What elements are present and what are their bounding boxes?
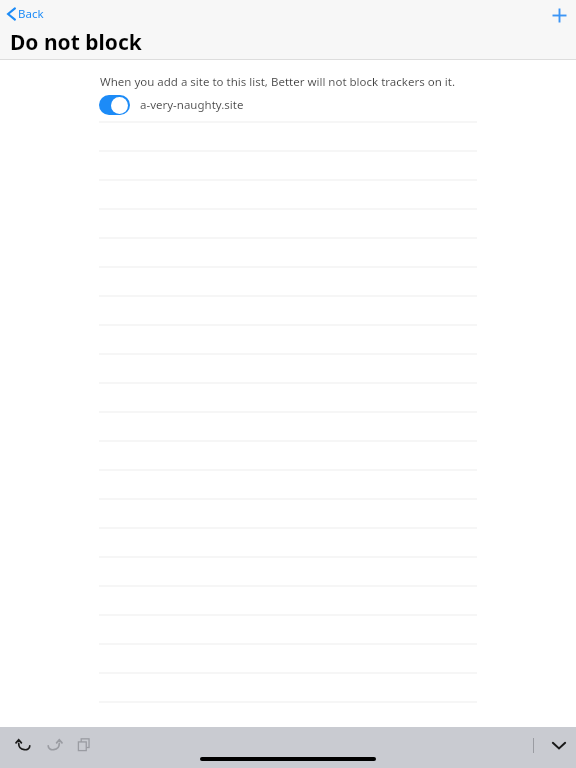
button[interactable]: Back [4, 4, 47, 24]
staticText: a-very-naughty.site [140, 97, 244, 113]
button[interactable]: Add site [545, 1, 573, 29]
staticText: Back [18, 6, 44, 22]
button[interactable]: Paste [69, 730, 99, 760]
button[interactable]: Undo [8, 730, 38, 760]
staticText: When you add a site to this list, Better… [100, 74, 455, 90]
button[interactable]: Redo [39, 730, 69, 760]
button[interactable]: Hide keyboard [544, 730, 574, 760]
button[interactable]: Allow a-very-naughty.site [99, 93, 477, 117]
staticText: Do not block [10, 28, 142, 57]
other: Allow a-very-naughty.site [99, 95, 130, 115]
